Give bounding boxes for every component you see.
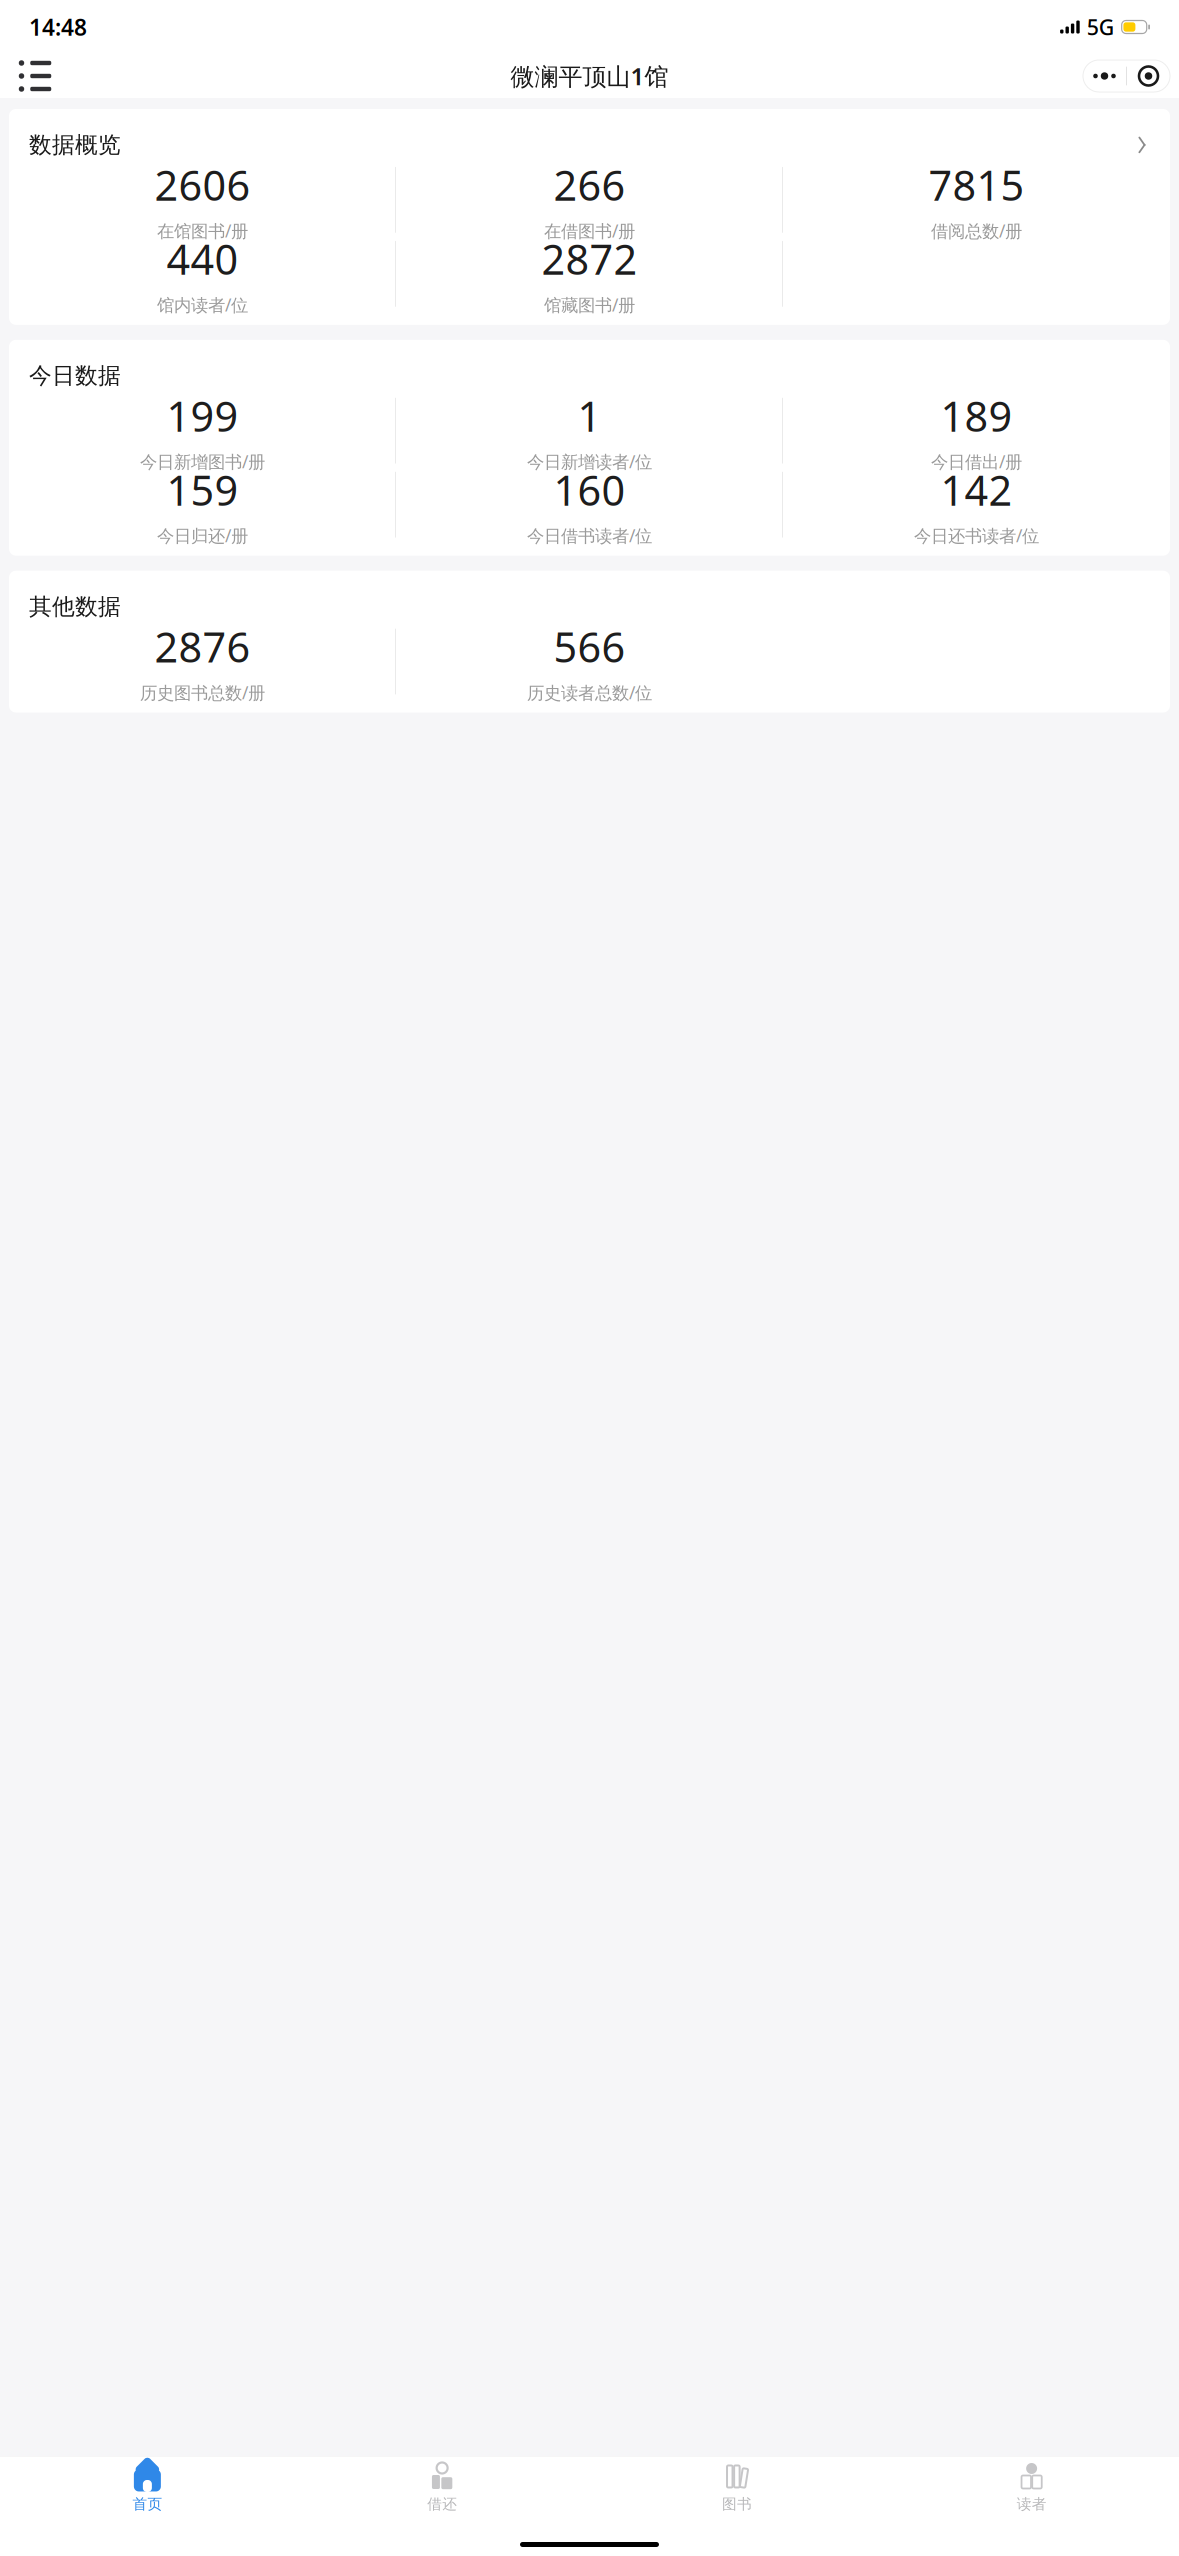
staticText: [971, 231, 982, 286]
staticText: 在馆图书/册: [157, 219, 248, 242]
button[interactable]: Close: [1127, 60, 1170, 92]
staticText: 读者: [1017, 2495, 1047, 2513]
button[interactable]: Menu: [13, 54, 57, 98]
staticText: 今日还书读者/位: [914, 524, 1039, 547]
button[interactable]: More: [1083, 60, 1126, 92]
staticText: 馆藏图书/册: [544, 293, 635, 316]
button[interactable]: 借还: [295, 2460, 590, 2514]
staticText: 今日借书读者/位: [527, 524, 652, 547]
staticText: 首页: [132, 2495, 162, 2513]
staticText: 14:48: [29, 12, 87, 42]
staticText: 2872: [541, 231, 637, 286]
staticText: 今日新增图书/册: [140, 450, 265, 473]
button[interactable]: 首页: [0, 2460, 295, 2514]
staticText: 数据概览: [29, 131, 121, 159]
staticText: 今日数据: [29, 362, 121, 390]
button[interactable]: 读者: [884, 2460, 1179, 2514]
staticText: 5G: [1087, 13, 1115, 41]
staticText: 馆内读者/位: [157, 293, 248, 316]
button[interactable]: 图书: [589, 2460, 884, 2514]
staticText: 历史图书总数/册: [140, 681, 265, 704]
button[interactable]: 数据概览: [9, 109, 1170, 163]
staticText: 159: [166, 462, 238, 517]
staticText: 266: [553, 157, 625, 212]
staticText: 其他数据: [29, 593, 121, 620]
staticText: 图书: [722, 2495, 752, 2513]
staticText: 1: [577, 388, 601, 443]
staticText: 2606: [154, 157, 250, 212]
staticText: 566: [553, 619, 625, 674]
staticText: 今日归还/册: [157, 524, 248, 547]
staticText: 2876: [154, 619, 250, 674]
staticText: 160: [553, 462, 625, 517]
staticText: 今日借出/册: [931, 450, 1022, 473]
staticText: 440: [166, 231, 238, 286]
staticText: 微澜平顶山1馆: [510, 60, 668, 92]
staticText: 在借图书/册: [544, 219, 635, 242]
staticText: 7815: [928, 157, 1024, 212]
staticText: 借还: [427, 2495, 457, 2513]
staticText: 142: [940, 462, 1012, 517]
staticText: 今日新增读者/位: [527, 450, 652, 473]
staticText: 借阅总数/册: [931, 219, 1022, 242]
staticText: 199: [166, 388, 238, 443]
staticText: 历史读者总数/位: [527, 681, 652, 704]
staticText: 189: [940, 388, 1012, 443]
